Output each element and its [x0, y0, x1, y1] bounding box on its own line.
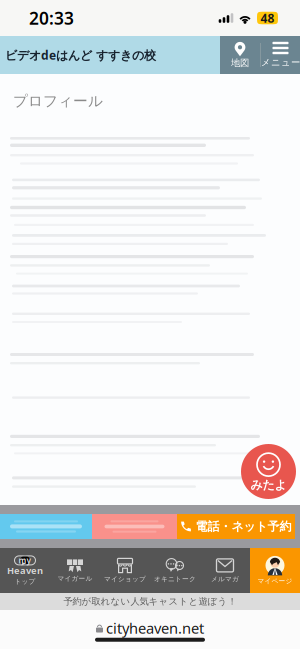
- button[interactable]: Web予約: [0, 514, 92, 539]
- button[interactable]: お気に入り: [92, 514, 177, 539]
- button[interactable]: 地図: [220, 36, 260, 74]
- button[interactable]: 電話・ネット予約: [177, 514, 295, 539]
- button[interactable]: my: [0, 548, 50, 593]
- staticText: 48: [260, 10, 274, 26]
- button[interactable]: オキニトーク: [150, 548, 200, 593]
- staticText: マイショップ: [104, 575, 146, 583]
- staticText: マイガール: [57, 574, 92, 583]
- staticText: メルマガ: [211, 575, 239, 583]
- staticText: cityheaven.net: [106, 618, 204, 638]
- staticText: みたよ: [250, 478, 286, 492]
- staticText: 20:33: [29, 6, 74, 29]
- staticText: 電話・ネット予約: [195, 519, 291, 534]
- button[interactable]: マイページ: [250, 548, 300, 593]
- staticText: ビデオdeはんど すすきの校: [5, 47, 156, 63]
- button[interactable]: マイガール: [50, 548, 100, 593]
- staticText: Heaven: [7, 564, 43, 577]
- button[interactable]: メルマガ: [200, 548, 250, 593]
- button[interactable]: メニュー: [261, 36, 300, 74]
- staticText: プロフィール: [13, 92, 103, 110]
- staticText: トップ: [14, 577, 35, 586]
- staticText: 予約が取れない人気キャストと遊ぼう！: [63, 596, 236, 607]
- staticText: オキニトーク: [154, 575, 196, 583]
- staticText: メニュー: [261, 57, 300, 68]
- button[interactable]: マイショップ: [100, 548, 150, 593]
- staticText: 地図: [231, 57, 249, 69]
- staticText: マイページ: [257, 577, 292, 585]
- button[interactable]: みたよ: [241, 444, 296, 499]
- staticText: my: [18, 555, 31, 566]
